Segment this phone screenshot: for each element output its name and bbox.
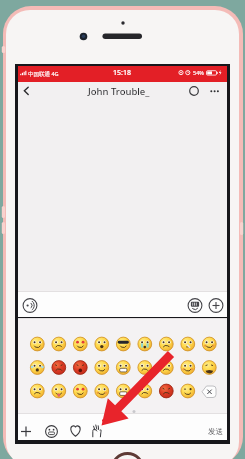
button[interactable] [70, 381, 91, 402]
button[interactable] [113, 334, 134, 355]
button[interactable] [177, 381, 198, 402]
button[interactable] [70, 334, 91, 355]
staticText: 发送 [208, 427, 223, 436]
button[interactable] [91, 381, 112, 402]
button[interactable] [187, 297, 203, 313]
button[interactable] [185, 82, 203, 100]
button[interactable] [134, 357, 155, 378]
staticText: 54% [193, 69, 204, 76]
button[interactable] [113, 357, 134, 378]
button[interactable] [70, 357, 91, 378]
button[interactable] [156, 381, 177, 402]
button[interactable] [88, 422, 105, 440]
staticText: 15:18 [113, 68, 131, 78]
button[interactable] [18, 422, 34, 440]
button[interactable] [199, 357, 220, 378]
button[interactable] [156, 357, 177, 378]
button[interactable] [91, 334, 112, 355]
button[interactable] [208, 297, 224, 313]
button[interactable] [177, 334, 198, 355]
button[interactable] [43, 422, 60, 440]
button[interactable] [113, 381, 134, 402]
button[interactable] [91, 357, 112, 378]
button[interactable] [27, 334, 48, 355]
button[interactable]: 发送 [203, 422, 227, 440]
button[interactable] [134, 334, 155, 355]
button[interactable] [27, 381, 48, 402]
button[interactable] [205, 82, 225, 100]
button[interactable] [18, 82, 40, 101]
button[interactable] [177, 357, 198, 378]
button[interactable] [67, 422, 84, 440]
button[interactable] [48, 334, 69, 355]
button[interactable] [156, 334, 177, 355]
button[interactable] [18, 82, 227, 292]
staticText: 中国联通 4G [28, 70, 59, 78]
button[interactable] [48, 357, 69, 378]
button[interactable] [134, 381, 155, 402]
button[interactable] [201, 385, 217, 398]
button[interactable] [27, 357, 48, 378]
button[interactable] [22, 297, 38, 313]
staticText: John Trouble_ [88, 85, 150, 98]
button[interactable] [199, 334, 220, 355]
button[interactable] [48, 381, 69, 402]
